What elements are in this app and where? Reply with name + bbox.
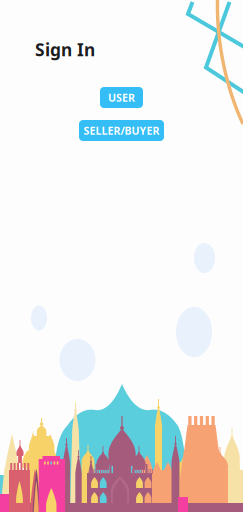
button[interactable]: SELLER/BUYER [79, 120, 164, 141]
button[interactable]: USER [100, 87, 143, 108]
staticText: SELLER/BUYER [83, 123, 159, 138]
staticText: Sign In [35, 38, 95, 61]
staticText: USER [108, 90, 135, 105]
